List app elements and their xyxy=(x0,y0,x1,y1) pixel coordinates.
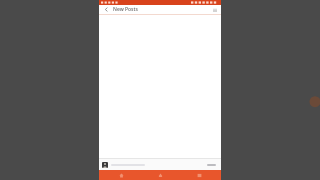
button[interactable]: More options xyxy=(210,5,219,14)
staticText: New Posts xyxy=(113,6,138,13)
button[interactable]: Notifications xyxy=(143,170,177,180)
button[interactable]: Home xyxy=(104,170,138,180)
button[interactable]: Post comment xyxy=(205,162,218,168)
button[interactable]: Back xyxy=(102,5,111,14)
button[interactable]: Post comment xyxy=(99,159,221,170)
button[interactable]: Profile xyxy=(182,170,216,180)
